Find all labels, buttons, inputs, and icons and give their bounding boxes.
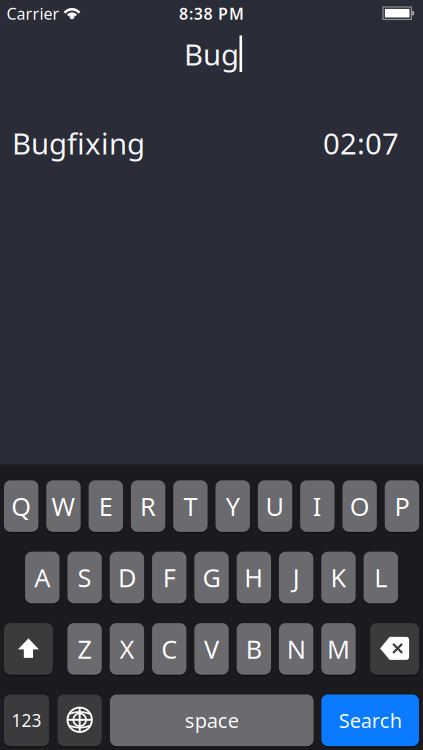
staticText: W <box>51 489 75 523</box>
staticText: L <box>374 561 387 594</box>
staticText: Search <box>339 707 402 734</box>
button[interactable]: 123 <box>4 694 49 746</box>
button[interactable]: C <box>152 623 186 675</box>
staticText: V <box>204 632 219 666</box>
staticText: C <box>161 632 177 666</box>
button[interactable]: Y <box>215 480 250 532</box>
button[interactable]: F <box>152 552 186 603</box>
staticText: F <box>163 561 176 594</box>
button[interactable]: Shift <box>4 623 53 675</box>
staticText: G <box>202 561 220 594</box>
staticText: 02:07 <box>323 123 399 162</box>
button[interactable]: Z <box>67 623 102 675</box>
button[interactable]: E <box>89 480 123 532</box>
staticText: A <box>34 561 50 594</box>
staticText: 123 <box>11 709 41 732</box>
button[interactable]: Bugfixing <box>0 112 423 174</box>
button[interactable]: K <box>321 552 356 603</box>
staticText: Bug <box>184 34 239 73</box>
staticText: P <box>394 489 409 523</box>
staticText: I <box>313 489 322 523</box>
button[interactable]: P <box>385 480 419 532</box>
staticText: Y <box>226 489 240 523</box>
staticText: D <box>118 561 136 594</box>
staticText: Bugfixing <box>12 123 145 162</box>
button[interactable]: Q <box>4 480 38 532</box>
button[interactable]: G <box>194 552 229 603</box>
button[interactable]: R <box>131 480 165 532</box>
button[interactable]: U <box>258 480 292 532</box>
button[interactable]: H <box>237 552 271 603</box>
staticText: Z <box>78 632 92 666</box>
staticText: H <box>244 561 263 594</box>
button[interactable]: space <box>110 694 314 746</box>
button[interactable]: M <box>321 623 356 675</box>
staticText: J <box>293 561 300 594</box>
staticText: K <box>330 561 346 594</box>
staticText: O <box>350 489 370 523</box>
button[interactable]: Next keyboard <box>58 694 102 746</box>
button[interactable]: I <box>300 480 334 532</box>
staticText: X <box>119 632 134 666</box>
staticText: N <box>287 632 306 666</box>
button[interactable]: Search <box>321 694 419 746</box>
button[interactable]: D <box>110 552 144 603</box>
staticText: M <box>327 632 350 666</box>
staticText: E <box>99 489 113 523</box>
staticText: S <box>78 561 92 594</box>
button[interactable]: V <box>194 623 229 675</box>
button[interactable]: S <box>67 552 102 603</box>
staticText: space <box>185 707 239 734</box>
button[interactable]: Delete <box>370 623 419 675</box>
button[interactable]: A <box>25 552 59 603</box>
button[interactable]: N <box>279 623 313 675</box>
button[interactable]: O <box>342 480 377 532</box>
button[interactable]: J <box>279 552 313 603</box>
button[interactable]: B <box>237 623 271 675</box>
staticText: T <box>183 489 197 523</box>
staticText: U <box>265 489 284 523</box>
button[interactable]: L <box>364 552 398 603</box>
staticText: R <box>140 489 156 523</box>
button[interactable]: T <box>173 480 208 532</box>
staticText: Carrier <box>6 3 59 24</box>
staticText: B <box>246 632 262 666</box>
button[interactable]: X <box>110 623 144 675</box>
staticText: 8:38 PM <box>179 3 244 24</box>
staticText: Q <box>11 489 31 523</box>
button[interactable]: W <box>46 480 81 532</box>
